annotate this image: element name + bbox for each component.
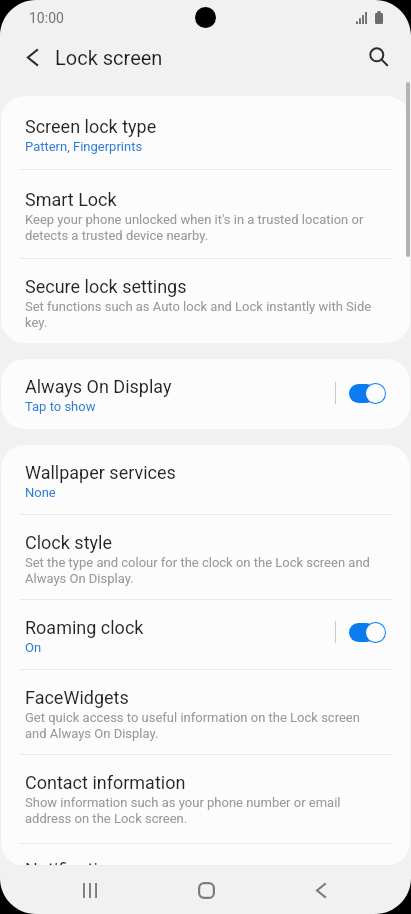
button[interactable]: Secure lock settings <box>1 259 410 343</box>
staticText: Get quick access to useful information o… <box>25 710 374 741</box>
staticText: None <box>25 485 56 500</box>
button[interactable]: Recent apps <box>56 866 124 914</box>
button[interactable]: Always On Display <box>1 359 410 429</box>
button[interactable]: Toggle <box>345 617 389 647</box>
button[interactable]: Toggle <box>345 378 389 408</box>
staticText: On <box>25 640 42 655</box>
staticText: FaceWidgets <box>25 687 129 708</box>
button[interactable]: Screen lock type <box>1 96 410 170</box>
staticText: Keep your phone unlocked when it's in a … <box>25 212 374 243</box>
button[interactable]: Smart Lock <box>1 170 410 259</box>
staticText: Set the type and colour for the clock on… <box>25 555 374 586</box>
staticText: Set functions such as Auto lock and Lock… <box>25 299 374 330</box>
button[interactable]: Home <box>172 866 240 914</box>
staticText: Show information such as your phone numb… <box>25 795 374 826</box>
staticText: Notifications <box>25 859 128 866</box>
staticText: Tap to show <box>25 399 96 414</box>
button[interactable]: Navigate up <box>11 36 53 78</box>
staticText: Secure lock settings <box>25 276 187 297</box>
staticText: Pattern, Fingerprints <box>25 139 143 154</box>
button[interactable]: Roaming clock <box>1 600 410 670</box>
button[interactable]: FaceWidgets <box>1 670 410 755</box>
staticText: 10:00 <box>29 10 64 26</box>
staticText: Clock style <box>25 532 112 553</box>
button[interactable]: Search <box>357 35 401 79</box>
button[interactable]: Clock style <box>1 515 410 600</box>
staticText: Screen lock type <box>25 116 157 137</box>
button[interactable]: Notifications <box>1 844 410 866</box>
staticText: Lock screen <box>55 46 163 69</box>
staticText: Contact information <box>25 772 186 793</box>
staticText: Roaming clock <box>25 617 144 638</box>
staticText: Always On Display <box>25 376 172 397</box>
staticText: Wallpaper services <box>25 462 176 483</box>
button[interactable]: Wallpaper services <box>1 445 410 515</box>
staticText: Smart Lock <box>25 189 117 210</box>
button[interactable]: Back <box>287 866 355 914</box>
button[interactable]: Contact information <box>1 755 410 844</box>
